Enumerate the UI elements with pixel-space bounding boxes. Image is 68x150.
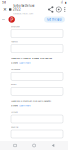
button[interactable]: Home: [30, 141, 38, 149]
staticText: Benefit: [11, 61, 18, 64]
staticText: ✕: [3, 7, 7, 12]
button[interactable]: [11, 72, 63, 80]
staticText: Employer: [11, 25, 20, 28]
button[interactable]: [11, 87, 63, 95]
staticText: Medicare 2 Medical Benefit Plan options: [11, 56, 52, 60]
staticText: turbotax.intuit.com: [13, 12, 33, 15]
staticText: 9:41: [2, 1, 6, 4]
button[interactable]: [11, 44, 63, 52]
button[interactable]: Close: [2, 6, 7, 12]
staticText: Learn more: [19, 61, 30, 64]
staticText: Medicare 8 Premium Plan extra benefits: [11, 99, 51, 103]
staticText: Address: [11, 40, 18, 43]
button[interactable]: Learn more: [19, 104, 30, 107]
button[interactable]: [11, 130, 63, 138]
button[interactable]: [11, 115, 63, 123]
staticText: Benefit: [11, 104, 18, 107]
button[interactable]: Learn more: [19, 61, 30, 64]
staticText: TurboTax Deluxe 2022: [13, 4, 35, 11]
staticText: P: [10, 16, 13, 23]
staticText: Account: [11, 110, 18, 113]
button[interactable]: Back: [49, 141, 57, 150]
button[interactable]: Get the app: [44, 16, 65, 22]
staticText: Routing: [11, 125, 18, 128]
staticText: Learn more: [19, 104, 30, 107]
button[interactable]: Page info: [56, 7, 61, 12]
staticText: Telephone: [11, 68, 20, 71]
staticText: Get the app: [47, 18, 62, 21]
button[interactable]: More options: [64, 7, 65, 12]
button[interactable]: [11, 29, 63, 37]
button[interactable]: Recent apps: [11, 142, 19, 149]
button[interactable]: Share: [48, 6, 53, 13]
staticText: ıl ▮: [61, 1, 66, 4]
staticText: Email: [11, 83, 17, 86]
